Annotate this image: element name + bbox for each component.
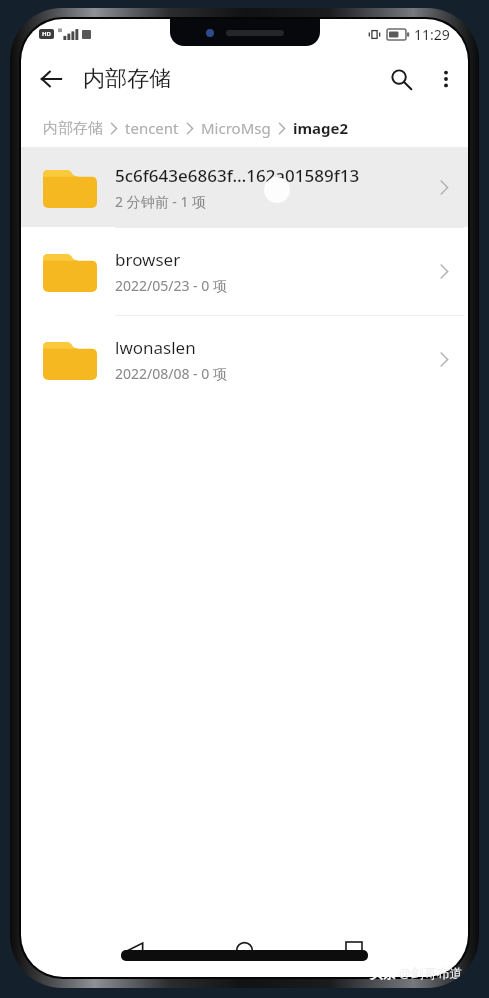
staticText: 2022/08/08 - 0 项 [115,364,227,383]
staticText: 内部存储 [83,65,171,93]
staticText: 头条 [370,965,396,981]
button[interactable]: Back [113,928,157,972]
staticText: browser [115,248,181,271]
button[interactable]: image2 [293,118,349,138]
staticText: MicroMsg [201,118,271,138]
button[interactable]: Search [378,56,424,102]
staticText: 5c6f643e6863f…162a01589f13 [115,164,360,187]
button[interactable]: 内部存储 [43,119,103,138]
button[interactable]: browser [21,228,468,315]
staticText: 11:29 [414,25,450,44]
staticText: 内部存储 [43,119,103,138]
button[interactable]: lwonaslen [21,316,468,403]
staticText: image2 [293,118,349,138]
button[interactable]: 5c6f643e6863f…162a01589f13 [21,147,468,227]
staticText: HD [42,30,51,38]
button[interactable]: Recent apps [332,928,376,972]
staticText: 2 分钟前 - 1 项 [115,192,207,211]
staticText: 2022/05/23 - 0 项 [115,276,227,295]
staticText: @剑哥布道 [399,964,463,982]
button[interactable]: Home [222,928,266,972]
staticText: lwonaslen [115,336,196,359]
staticText: tencent [125,118,179,138]
button[interactable]: More options [424,57,468,101]
button[interactable]: tencent [125,118,179,138]
button[interactable]: MicroMsg [201,118,271,138]
button[interactable]: Back [27,55,75,103]
